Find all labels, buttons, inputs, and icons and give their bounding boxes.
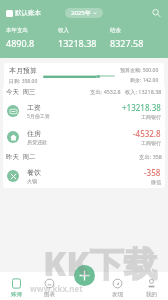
button[interactable]: 住房 — [3, 124, 165, 150]
staticText: 日剩: 358.00 — [9, 78, 38, 85]
staticText: 默认账本 — [15, 9, 41, 17]
staticText: 住房 — [27, 129, 41, 138]
staticText: 收入 — [58, 27, 69, 34]
staticText: 本年支出 — [6, 27, 28, 34]
button[interactable]: 2025年 — [65, 8, 103, 18]
staticText: 本月预算 — [9, 66, 37, 75]
staticText: 火锅 — [27, 178, 37, 184]
staticText: 发现 — [112, 291, 123, 298]
staticText: +13218.38 — [122, 102, 161, 113]
staticText: 微信 — [151, 179, 161, 185]
button[interactable]: 默认账本 — [6, 9, 41, 17]
staticText: www.kkx.net — [30, 283, 83, 294]
staticText: 昨天 周二 — [6, 152, 36, 161]
button[interactable]: 图表 — [33, 274, 66, 298]
staticText: 支出: 4532.8 收入: 13218.38 — [90, 88, 162, 95]
staticText: 房贷还款 — [27, 139, 47, 145]
button[interactable]: 发现 — [100, 274, 134, 298]
staticText: 我的 — [146, 291, 157, 298]
staticText: -4532.8 — [133, 128, 161, 139]
staticText: 账簿 — [11, 291, 22, 298]
staticText: 2025年 — [71, 9, 91, 17]
staticText: 8327.58 — [110, 37, 144, 49]
button[interactable]: 我的 — [134, 274, 168, 298]
staticText: 工资 — [27, 103, 41, 112]
button[interactable]: Search — [148, 5, 164, 21]
staticText: 预算金额: 500.00 — [120, 67, 159, 74]
staticText: 结余 — [110, 27, 121, 34]
button[interactable]: 账簿 — [0, 274, 33, 298]
staticText: 餐饮 — [27, 168, 41, 177]
staticText: 4890.8 — [6, 37, 35, 49]
staticText: 剩余: 142.00 — [130, 77, 159, 84]
staticText: 5月份工资 — [27, 113, 50, 120]
staticText: 支出: 358 — [139, 153, 162, 160]
staticText: 工商银行 — [141, 140, 161, 146]
button[interactable]: 餐饮 — [3, 163, 165, 188]
staticText: -358 — [144, 167, 161, 178]
staticText: 今天 周三 — [6, 87, 36, 96]
staticText: 13218.38 — [58, 37, 97, 49]
staticText: 工商银行 — [141, 114, 161, 120]
button[interactable]: 工资 — [3, 98, 165, 124]
button[interactable]: Add record — [74, 265, 95, 286]
staticText: KK下载 — [43, 240, 158, 286]
staticText: 图表 — [44, 291, 55, 298]
button[interactable]: 本月预算 — [4, 63, 164, 88]
